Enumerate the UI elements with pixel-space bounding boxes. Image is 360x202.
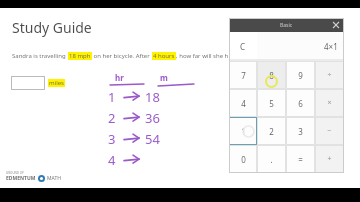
- staticText: 4: [108, 151, 116, 169]
- staticText: ÷: [327, 70, 332, 80]
- staticText: 5: [269, 98, 274, 109]
- button[interactable]: 6: [286, 89, 315, 117]
- button[interactable]: 7: [229, 61, 257, 89]
- staticText: 1: [108, 88, 116, 106]
- button[interactable]: −: [315, 117, 344, 145]
- staticText: GROUND UP: [6, 171, 24, 175]
- staticText: ×: [327, 98, 332, 108]
- staticText: C: [240, 41, 246, 52]
- staticText: 2: [269, 126, 274, 137]
- staticText: 8: [269, 70, 274, 81]
- staticText: 0: [241, 154, 246, 165]
- staticText: 4×1: [324, 41, 338, 52]
- staticText: Basic: [280, 22, 293, 29]
- staticText: 36: [145, 109, 160, 127]
- staticText: 18: [145, 88, 160, 106]
- button[interactable]: =: [286, 145, 315, 173]
- staticText: 9: [298, 70, 303, 81]
- button[interactable]: Close calculator: [331, 20, 341, 30]
- button[interactable]: ÷: [315, 61, 344, 89]
- staticText: 3: [108, 130, 116, 148]
- staticText: −: [327, 126, 332, 136]
- staticText: hr: [115, 72, 124, 83]
- button[interactable]: +: [315, 145, 344, 173]
- button[interactable]: .: [257, 145, 286, 173]
- button[interactable]: 4: [229, 89, 257, 117]
- button[interactable]: C: [229, 32, 257, 60]
- staticText: on her bicycle. After: [92, 52, 152, 60]
- staticText: 4: [241, 98, 246, 109]
- button[interactable]: 8: [257, 61, 286, 89]
- staticText: 4 hours: [153, 52, 175, 60]
- staticText: 54: [145, 130, 160, 148]
- staticText: Sandra is travelling: [12, 52, 68, 60]
- button[interactable]: 3: [286, 117, 315, 145]
- staticText: EDMENTUM: [6, 175, 36, 182]
- staticText: miles: [49, 79, 64, 87]
- staticText: 6: [298, 98, 303, 109]
- staticText: 3: [298, 126, 303, 137]
- button[interactable]: 0: [229, 145, 257, 173]
- button[interactable]: 9: [286, 61, 315, 89]
- button[interactable]: 1: [229, 117, 257, 145]
- staticText: , how far will she h: [176, 52, 229, 60]
- staticText: =: [298, 154, 303, 165]
- staticText: .: [270, 154, 273, 165]
- staticText: m: [160, 72, 168, 83]
- button[interactable]: 2: [257, 117, 286, 145]
- button[interactable]: ×: [315, 89, 344, 117]
- staticText: 7: [241, 70, 246, 81]
- button[interactable]: 5: [257, 89, 286, 117]
- staticText: 18 mph: [69, 52, 91, 60]
- staticText: +: [327, 154, 332, 164]
- staticText: MATH: [47, 175, 61, 182]
- button[interactable]: [11, 76, 45, 90]
- staticText: 1: [241, 126, 246, 137]
- staticText: Study Guide: [12, 18, 92, 37]
- staticText: 2: [108, 109, 116, 127]
